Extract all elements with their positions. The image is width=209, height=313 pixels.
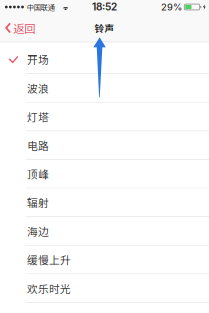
- button[interactable]: 缓慢上升: [0, 246, 209, 274]
- staticText: 18:52: [92, 1, 117, 13]
- staticText: 电路: [27, 137, 49, 153]
- button[interactable]: 开场: [0, 45, 209, 73]
- button[interactable]: 顶峰: [0, 160, 209, 188]
- staticText: 铃声: [94, 21, 114, 35]
- button[interactable]: 海边: [0, 217, 209, 245]
- staticText: 中国联通: [27, 2, 55, 12]
- staticText: 波浪: [27, 80, 49, 96]
- staticText: 海边: [27, 223, 49, 239]
- staticText: 开场: [27, 52, 49, 67]
- staticText: 缓慢上升: [27, 252, 71, 267]
- button[interactable]: 辐射: [0, 188, 209, 216]
- button[interactable]: 灯塔: [0, 103, 209, 131]
- staticText: 29%: [161, 1, 182, 13]
- button[interactable]: 欢乐时光: [0, 274, 209, 302]
- staticText: 返回: [13, 20, 35, 36]
- staticText: 灯塔: [27, 109, 49, 124]
- button[interactable]: 返回: [0, 14, 43, 42]
- staticText: 欢乐时光: [27, 280, 71, 296]
- button[interactable]: 波浪: [0, 74, 209, 102]
- staticText: 辐射: [27, 195, 49, 210]
- button[interactable]: 电路: [0, 131, 209, 159]
- staticText: 顶峰: [27, 166, 49, 181]
